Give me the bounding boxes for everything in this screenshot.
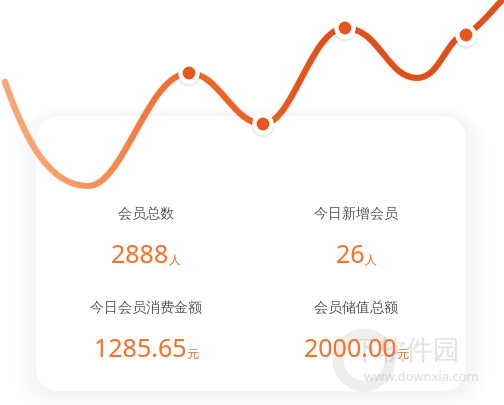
staticText: 1285.65 [94,330,187,364]
staticText: 今日会员消费金额 [90,299,202,317]
staticText: 2000.00 [304,330,397,364]
staticText: 下软件园 [352,333,460,367]
staticText: 人 [365,252,377,267]
staticText: www.downxia.com [364,367,479,385]
staticText: 元 [187,346,199,361]
button[interactable]: 今日新增会员 [251,205,461,270]
staticText: 元 [397,346,409,361]
staticText: 2888 [111,236,169,270]
button[interactable]: 会员储值总额 [251,299,461,364]
staticText: 会员总数 [118,205,174,223]
staticText: 今日新增会员 [314,205,398,223]
staticText: 人 [169,252,181,267]
button[interactable]: 会员总数 [41,205,251,270]
staticText: 会员储值总额 [314,299,398,317]
button[interactable] [36,116,466,391]
button[interactable]: 今日会员消费金额 [41,299,251,364]
staticText: 26 [336,236,365,270]
